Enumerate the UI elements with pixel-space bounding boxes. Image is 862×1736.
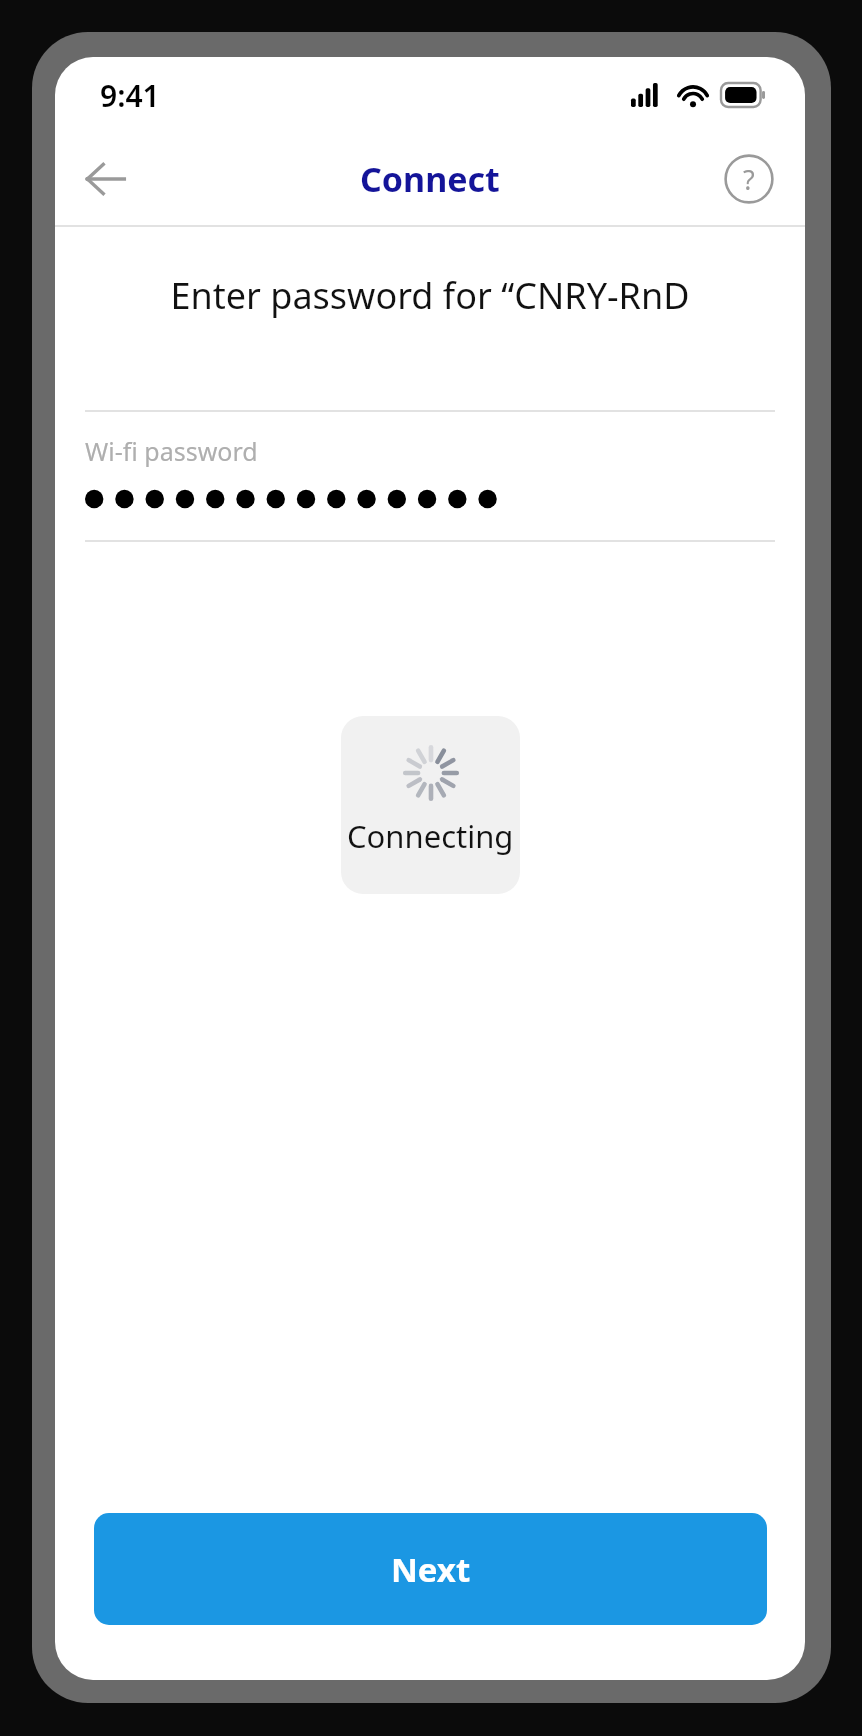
staticText: Connecting — [347, 815, 514, 857]
staticText: 9:41 — [100, 75, 160, 116]
button[interactable]: Wi-fi password — [55, 412, 805, 540]
staticText: Wi-fi password — [85, 434, 258, 468]
button[interactable]: Next — [94, 1513, 767, 1625]
staticText: Connect — [360, 156, 500, 202]
staticText: Enter password for “CNRY-RnD — [79, 271, 781, 320]
button[interactable]: Help — [717, 147, 781, 211]
button[interactable]: Back — [73, 147, 137, 211]
staticText: Next — [391, 1547, 471, 1592]
staticText: ? — [743, 161, 755, 198]
